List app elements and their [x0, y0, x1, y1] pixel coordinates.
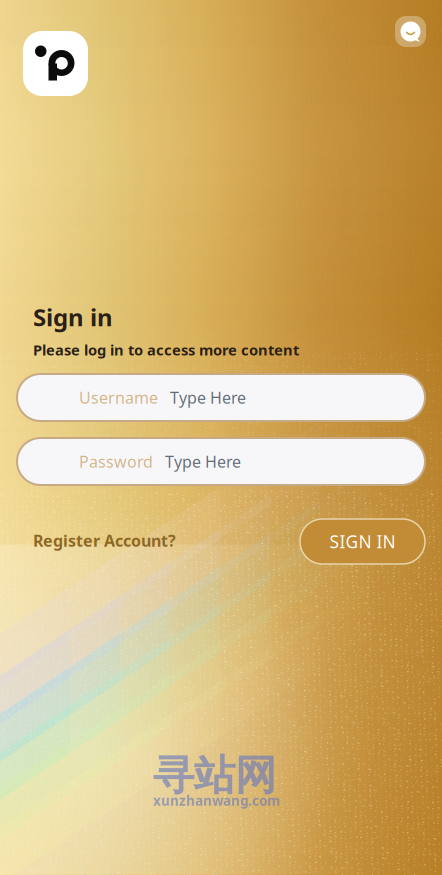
- button[interactable]: SIGN IN: [300, 519, 425, 564]
- button[interactable]: Register Account?: [33, 530, 176, 551]
- staticText: SIGN IN: [329, 530, 395, 553]
- staticText: Please log in to access more content: [33, 340, 299, 359]
- button[interactable]: Support chat: [395, 16, 426, 47]
- staticText: Password: [79, 451, 153, 472]
- staticText: 寻站网: [153, 750, 276, 801]
- staticText: Sign in: [33, 301, 113, 333]
- staticText: Type Here: [170, 387, 246, 408]
- staticText: xunzhanwang.com: [153, 792, 280, 809]
- staticText: Username: [79, 387, 158, 408]
- staticText: Register Account?: [33, 530, 176, 551]
- staticText: Type Here: [165, 451, 241, 472]
